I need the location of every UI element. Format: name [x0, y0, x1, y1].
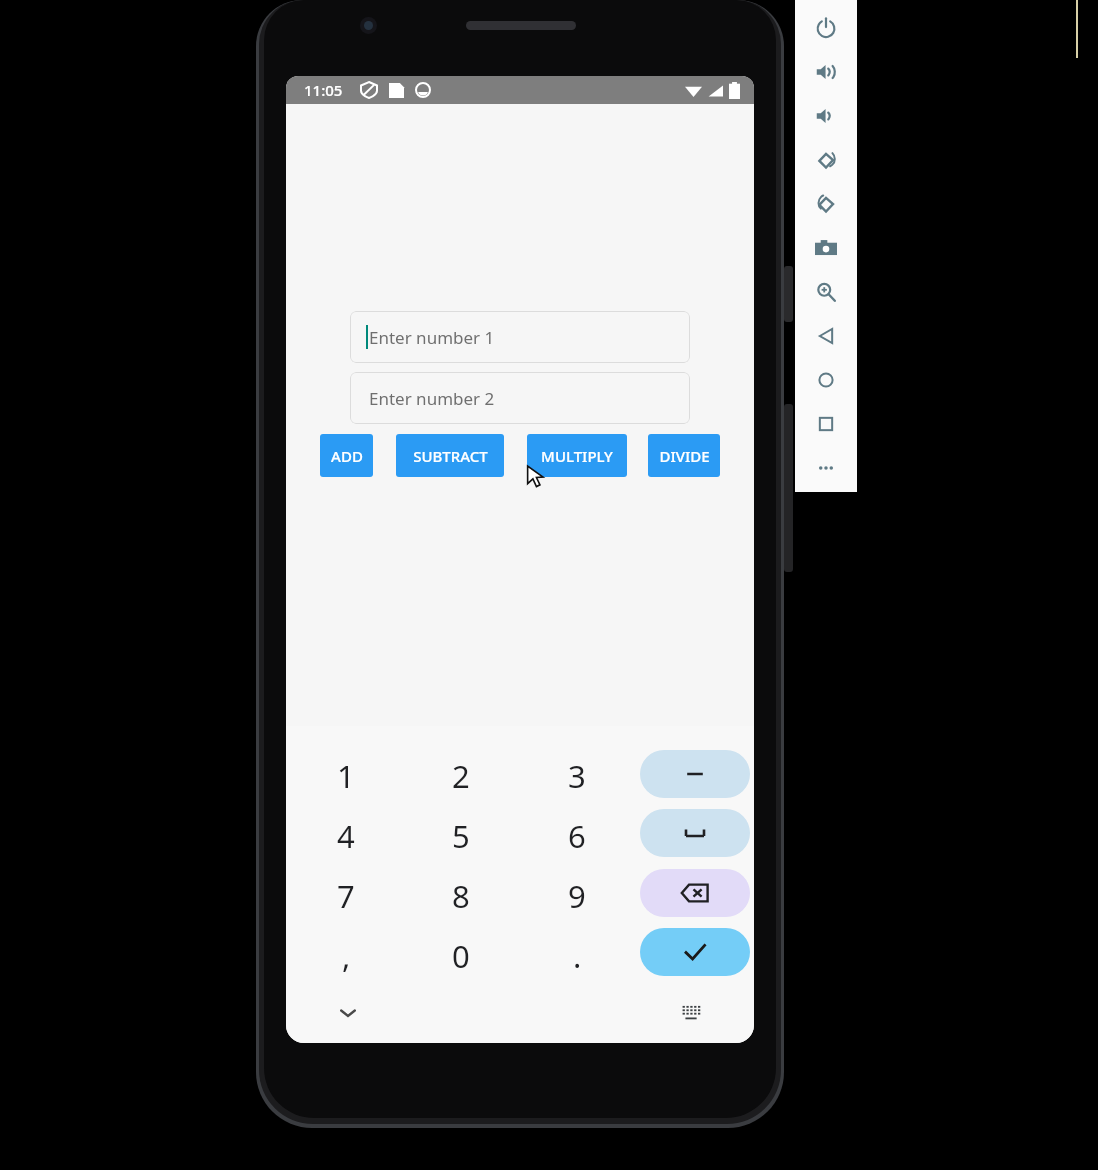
button[interactable]: More — [809, 451, 843, 485]
button[interactable]: DIVIDE — [648, 434, 720, 477]
button[interactable]: 4 — [288, 806, 404, 866]
button[interactable]: Volume up — [809, 55, 843, 89]
button[interactable]: Rotate right — [809, 187, 843, 221]
button[interactable]: 0 — [403, 926, 519, 986]
button[interactable]: Home — [809, 363, 843, 397]
staticText: 2 — [452, 755, 470, 797]
button[interactable]: Screenshot — [809, 231, 843, 265]
staticText: 11:05 — [304, 80, 343, 100]
button[interactable]: SUBTRACT — [396, 434, 504, 477]
button[interactable]: Overview — [809, 407, 843, 441]
button[interactable]: ADD — [320, 434, 373, 477]
button[interactable]: Power — [809, 11, 843, 45]
button[interactable]: Space — [640, 809, 750, 857]
button[interactable]: 8 — [403, 866, 519, 926]
button[interactable]: Enter — [640, 928, 750, 976]
staticText: 8 — [452, 875, 470, 917]
button[interactable]: Switch keyboard — [675, 996, 709, 1030]
button[interactable]: Enter number 2 — [350, 372, 690, 424]
button[interactable]: . — [519, 926, 635, 986]
staticText: 4 — [337, 815, 355, 857]
staticText: Enter number 1 — [369, 326, 495, 349]
button[interactable]: 3 — [519, 746, 635, 806]
staticText: 0 — [452, 935, 470, 977]
staticText: DIVIDE — [659, 446, 710, 466]
button[interactable]: 5 — [403, 806, 519, 866]
button[interactable]: Volume down — [809, 99, 843, 133]
staticText: ADD — [331, 446, 363, 466]
button[interactable]: 7 — [288, 866, 404, 926]
staticText: 1 — [337, 755, 355, 797]
staticText: MULTIPLY — [541, 446, 613, 466]
button[interactable]: MULTIPLY — [527, 434, 627, 477]
button[interactable]: Minus — [640, 750, 750, 798]
staticText: 9 — [568, 875, 586, 917]
button[interactable]: Rotate left — [809, 143, 843, 177]
button[interactable]: 2 — [403, 746, 519, 806]
button[interactable]: Enter number 1 — [350, 311, 690, 363]
button[interactable]: 6 — [519, 806, 635, 866]
staticText: . — [573, 935, 582, 977]
button[interactable]: , — [288, 926, 404, 986]
button[interactable]: Zoom — [809, 275, 843, 309]
staticText: , — [342, 935, 351, 977]
staticText: SUBTRACT — [413, 446, 488, 466]
button[interactable]: 1 — [288, 746, 404, 806]
staticText: 6 — [568, 815, 586, 857]
button[interactable]: 9 — [519, 866, 635, 926]
staticText: 7 — [337, 875, 355, 917]
button[interactable]: Back — [809, 319, 843, 353]
button[interactable]: Hide keyboard — [331, 996, 365, 1030]
staticText: Enter number 2 — [369, 387, 495, 410]
staticText: 3 — [568, 755, 586, 797]
staticText: 5 — [452, 815, 470, 857]
button[interactable]: Backspace — [640, 869, 750, 917]
